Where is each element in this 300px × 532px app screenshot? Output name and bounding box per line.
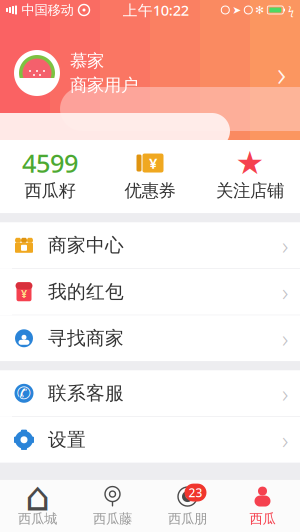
- staticText: ϟ: [288, 3, 294, 17]
- staticText: 西瓜朋: [168, 511, 207, 527]
- staticText: 23: [188, 485, 202, 500]
- button[interactable]: ★: [200, 140, 300, 213]
- staticText: 关注店铺: [216, 180, 284, 201]
- staticText: 上午10:22: [123, 0, 189, 20]
- staticText: 设置: [48, 428, 86, 451]
- staticText: 优惠券: [124, 180, 175, 201]
- button[interactable]: 设置: [0, 417, 300, 463]
- staticText: ›: [282, 377, 288, 409]
- staticText: ✻: [255, 4, 264, 16]
- staticText: ›: [282, 229, 288, 261]
- staticText: ›: [282, 424, 288, 456]
- staticText: 我的红包: [48, 280, 124, 303]
- staticText: ›: [277, 50, 286, 96]
- button[interactable]: 23: [150, 480, 225, 532]
- staticText: 4599: [22, 146, 78, 180]
- button[interactable]: ✆: [0, 370, 300, 417]
- button[interactable]: 4599: [0, 140, 100, 213]
- staticText: ›: [282, 276, 288, 308]
- staticText: 西瓜: [249, 511, 275, 527]
- button[interactable]: ¥: [100, 140, 200, 213]
- button[interactable]: ¥: [0, 269, 300, 315]
- staticText: 商家用户: [70, 74, 138, 96]
- staticText: ›: [282, 322, 288, 354]
- staticText: 慕家: [70, 50, 104, 71]
- button[interactable]: ⌂: [0, 480, 75, 532]
- staticText: 西瓜城: [18, 511, 57, 527]
- staticText: 西瓜籽: [24, 180, 75, 201]
- staticText: 中国移动: [21, 2, 73, 18]
- staticText: ⌂: [25, 474, 50, 519]
- staticText: ✆: [16, 383, 31, 403]
- staticText: 商家中心: [48, 234, 124, 257]
- staticText: ¥: [21, 287, 27, 301]
- staticText: 联系客服: [48, 382, 124, 405]
- button[interactable]: 寻找商家: [0, 315, 300, 361]
- button[interactable]: 商家中心: [0, 222, 300, 269]
- staticText: ¥: [149, 153, 157, 173]
- staticText: 西瓜藤: [93, 511, 132, 527]
- staticText: 寻找商家: [48, 327, 124, 350]
- button[interactable]: 慕家: [0, 47, 300, 99]
- button[interactable]: 西瓜藤: [75, 480, 150, 532]
- staticText: ★: [235, 145, 264, 181]
- staticText: ➤: [232, 4, 241, 16]
- button[interactable]: 西瓜: [225, 480, 300, 532]
